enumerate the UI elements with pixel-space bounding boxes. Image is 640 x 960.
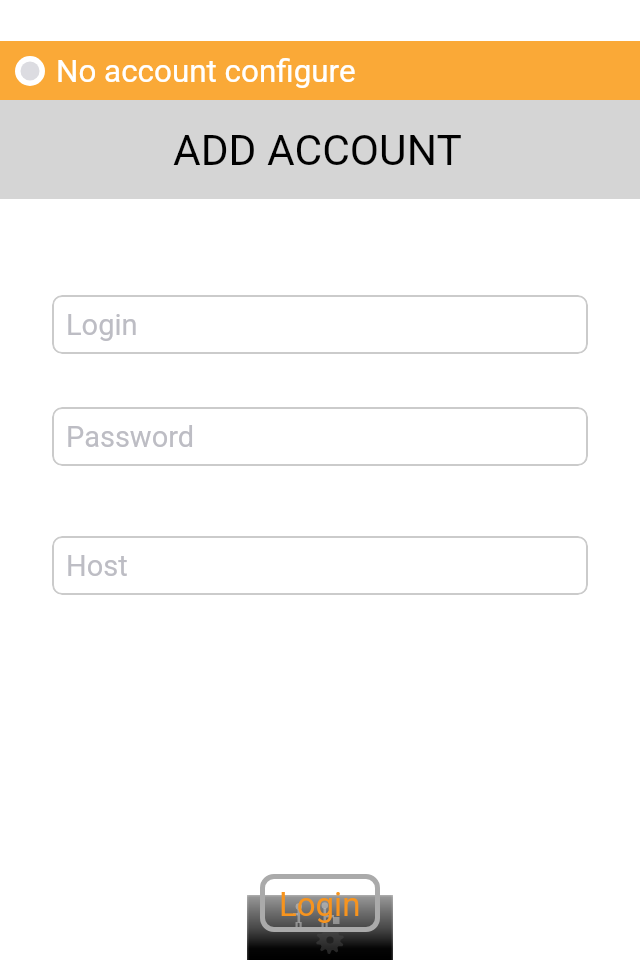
staticText: ADD ACCOUNT [173,126,462,176]
button[interactable]: Login [247,867,393,960]
staticText: No account configure [56,53,356,90]
button[interactable]: Account status [0,41,640,100]
staticText: Host [66,549,128,583]
staticText: Password [66,420,195,454]
staticText: Login [279,885,361,924]
button[interactable]: Password [52,407,588,466]
other: Account status [15,56,45,86]
staticText: Login [66,308,138,342]
button[interactable]: Login [52,295,588,354]
button[interactable]: Host [52,536,588,595]
